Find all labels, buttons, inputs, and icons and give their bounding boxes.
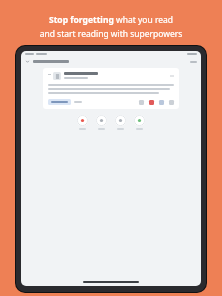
button[interactable] — [48, 99, 71, 105]
other: Collapse thread — [25, 59, 30, 64]
button[interactable]: Note — [159, 100, 164, 105]
staticText: and start reading with superpowers — [0, 28, 222, 40]
button[interactable]: Remember — [77, 115, 88, 126]
other: More options — [170, 74, 174, 78]
button[interactable]: Done — [134, 115, 145, 126]
button[interactable]: Archive — [96, 115, 107, 126]
button[interactable]: Highlight — [149, 100, 154, 105]
staticText: Stop forgetting what you read — [0, 14, 222, 26]
button[interactable]: Share — [169, 100, 174, 105]
other: Expand — [48, 73, 51, 76]
button[interactable]: Refresh — [139, 100, 144, 105]
button[interactable]: Expand — [43, 68, 179, 109]
button[interactable]: Snooze — [115, 115, 126, 126]
button[interactable]: Collapse thread — [21, 57, 201, 66]
